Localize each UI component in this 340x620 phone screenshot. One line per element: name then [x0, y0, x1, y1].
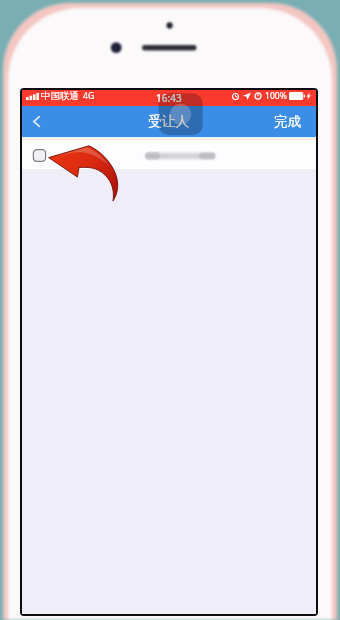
button[interactable]: 完成 [274, 113, 301, 130]
staticText: 4G [83, 90, 95, 102]
staticText: 受让人 [148, 113, 190, 130]
staticText: 完成 [274, 113, 301, 130]
button[interactable] [22, 137, 316, 169]
staticText: 中国联通 [41, 90, 79, 102]
button[interactable]: Back [22, 106, 50, 137]
staticText: 16:43 [156, 91, 182, 105]
staticText: 100% [265, 90, 287, 102]
